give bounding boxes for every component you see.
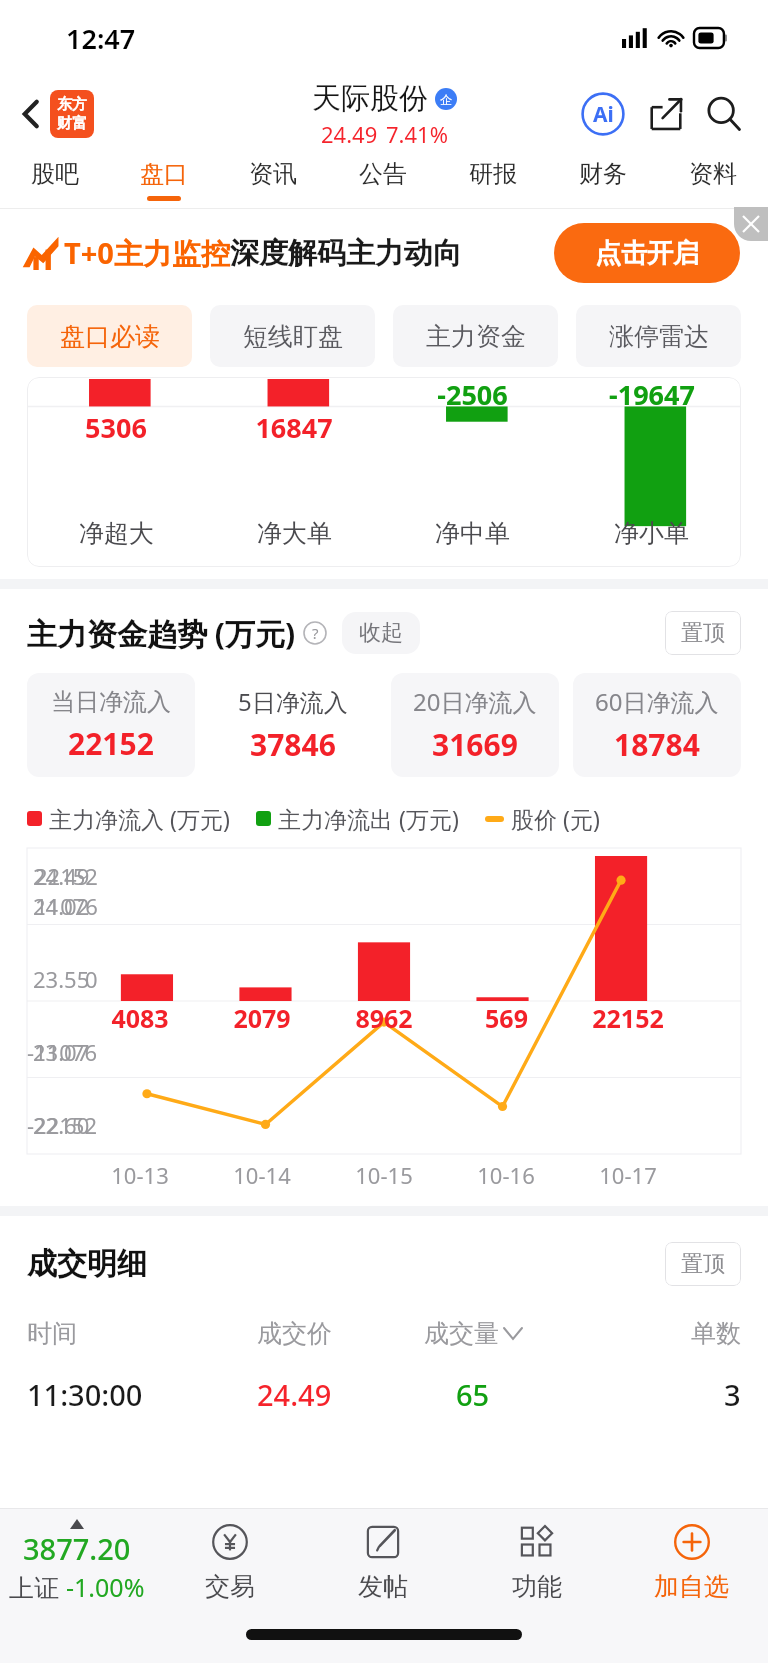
button[interactable]: 股吧	[0, 152, 109, 208]
staticText: 16847	[255, 409, 333, 446]
staticText: 23.07	[33, 1037, 90, 1067]
button[interactable]: 盘口必读	[27, 305, 192, 367]
staticText: 财富	[57, 114, 87, 133]
staticText: 24.49	[321, 119, 378, 149]
staticText: 主力资金	[426, 321, 526, 352]
button[interactable]: 5日净流入	[209, 673, 377, 777]
staticText: 交易	[205, 1571, 255, 1602]
staticText: 18784	[614, 724, 700, 765]
button[interactable]: 20日净流入	[391, 673, 559, 777]
button[interactable]: 交易	[153, 1509, 306, 1613]
button[interactable]: AI	[578, 89, 628, 139]
staticText: 时间	[27, 1318, 77, 1349]
staticText: 8962	[355, 1001, 413, 1035]
staticText: 净中单	[435, 518, 510, 549]
staticText: -22152	[27, 1110, 98, 1140]
button[interactable]: 主力资金	[393, 305, 558, 367]
staticText: -2506	[437, 377, 508, 413]
staticText: Ai	[593, 100, 614, 129]
staticText: 24.49	[33, 861, 90, 891]
staticText: -19647	[609, 377, 695, 413]
button[interactable]: Close	[734, 207, 768, 241]
staticText: 60日净流入	[595, 685, 719, 718]
staticText: 公告	[359, 159, 407, 189]
button[interactable]: 置顶	[665, 1242, 741, 1286]
button[interactable]: 财务	[548, 152, 658, 208]
button[interactable]: 资讯	[218, 152, 328, 208]
button[interactable]: 短线盯盘	[210, 305, 375, 367]
staticText: 20日净流入	[413, 685, 537, 718]
staticText: 10-17	[599, 1160, 657, 1190]
staticText: 22152	[35, 861, 98, 891]
staticText: 37846	[250, 724, 336, 765]
button[interactable]: 60日净流入	[573, 673, 741, 777]
staticText: 发帖	[358, 1571, 408, 1602]
staticText: 3	[724, 1375, 741, 1414]
button[interactable]: 3877.20	[0, 1509, 153, 1613]
staticText: 涨停雷达	[609, 321, 709, 352]
staticText: 股价 (元)	[511, 803, 600, 834]
button[interactable]: 公告	[328, 152, 438, 208]
staticText: 深度解码主力动向	[230, 235, 462, 272]
staticText: 当日净流入	[51, 687, 171, 717]
staticText: 净超大	[79, 518, 154, 549]
button[interactable]: 盘口	[109, 152, 218, 208]
staticText: -11076	[27, 1037, 98, 1067]
button[interactable]: Search	[700, 90, 748, 138]
button[interactable]: Help	[302, 620, 328, 646]
staticText: 7.41%	[386, 119, 448, 149]
staticText: 收起	[359, 619, 403, 647]
staticText: 盘口必读	[60, 321, 160, 352]
button[interactable]: 涨停雷达	[576, 305, 741, 367]
button[interactable]: 加自选	[614, 1509, 768, 1613]
button[interactable]: T+0主力监控	[0, 209, 768, 297]
staticText: 资料	[689, 159, 737, 189]
staticText: 31669	[432, 724, 518, 765]
staticText: 10-14	[233, 1160, 291, 1190]
staticText: 主力净流出 (万元)	[278, 803, 459, 834]
staticText: 主力资金趋势 (万元)	[27, 613, 296, 654]
staticText: 5306	[85, 409, 147, 446]
staticText: 5日净流入	[238, 685, 348, 718]
staticText: -1.00%	[66, 1570, 145, 1604]
staticText: 11:30:00	[27, 1375, 143, 1414]
button[interactable]: Back	[16, 90, 100, 138]
staticText: 功能	[512, 1571, 562, 1602]
staticText: 成交量	[424, 1318, 499, 1349]
button[interactable]: 发帖	[306, 1509, 460, 1613]
staticText: ?	[312, 623, 319, 643]
staticText: 10-16	[477, 1160, 535, 1190]
staticText: 3877.20	[23, 1529, 131, 1568]
staticText: 点击开启	[595, 237, 699, 270]
staticText: 东方	[57, 95, 87, 114]
button[interactable]: 功能	[460, 1509, 614, 1613]
staticText: 资讯	[249, 159, 297, 189]
staticText: 成交价	[257, 1318, 332, 1349]
button[interactable]: Share	[642, 90, 690, 138]
staticText: 天际股份	[312, 80, 428, 117]
button[interactable]: 当日净流入	[27, 673, 195, 777]
other: Back	[22, 98, 40, 130]
staticText: 上证	[9, 1570, 66, 1604]
staticText: 单数	[691, 1318, 741, 1349]
button[interactable]: 资料	[658, 152, 768, 208]
staticText: 24.49	[257, 1375, 332, 1414]
staticText: 成交明细	[27, 1245, 147, 1283]
staticText: 财务	[579, 159, 627, 189]
staticText: 22152	[592, 1001, 664, 1035]
staticText: 研报	[469, 159, 517, 189]
button[interactable]: 收起	[342, 612, 420, 654]
staticText: 22152	[68, 723, 154, 764]
button[interactable]: 置顶	[665, 611, 741, 655]
staticText: 4083	[111, 1001, 169, 1035]
staticText: 11076	[35, 891, 98, 921]
button[interactable]: 研报	[438, 152, 548, 208]
button[interactable]: 点击开启	[554, 223, 740, 283]
staticText: 22.60	[33, 1110, 90, 1140]
staticText: 0	[85, 964, 98, 994]
staticText: 23.55	[33, 964, 90, 994]
staticText: 12:47	[66, 20, 136, 57]
staticText: 短线盯盘	[243, 321, 343, 352]
staticText: 净小单	[614, 518, 689, 549]
staticText: 主力净流入 (万元)	[49, 803, 230, 834]
